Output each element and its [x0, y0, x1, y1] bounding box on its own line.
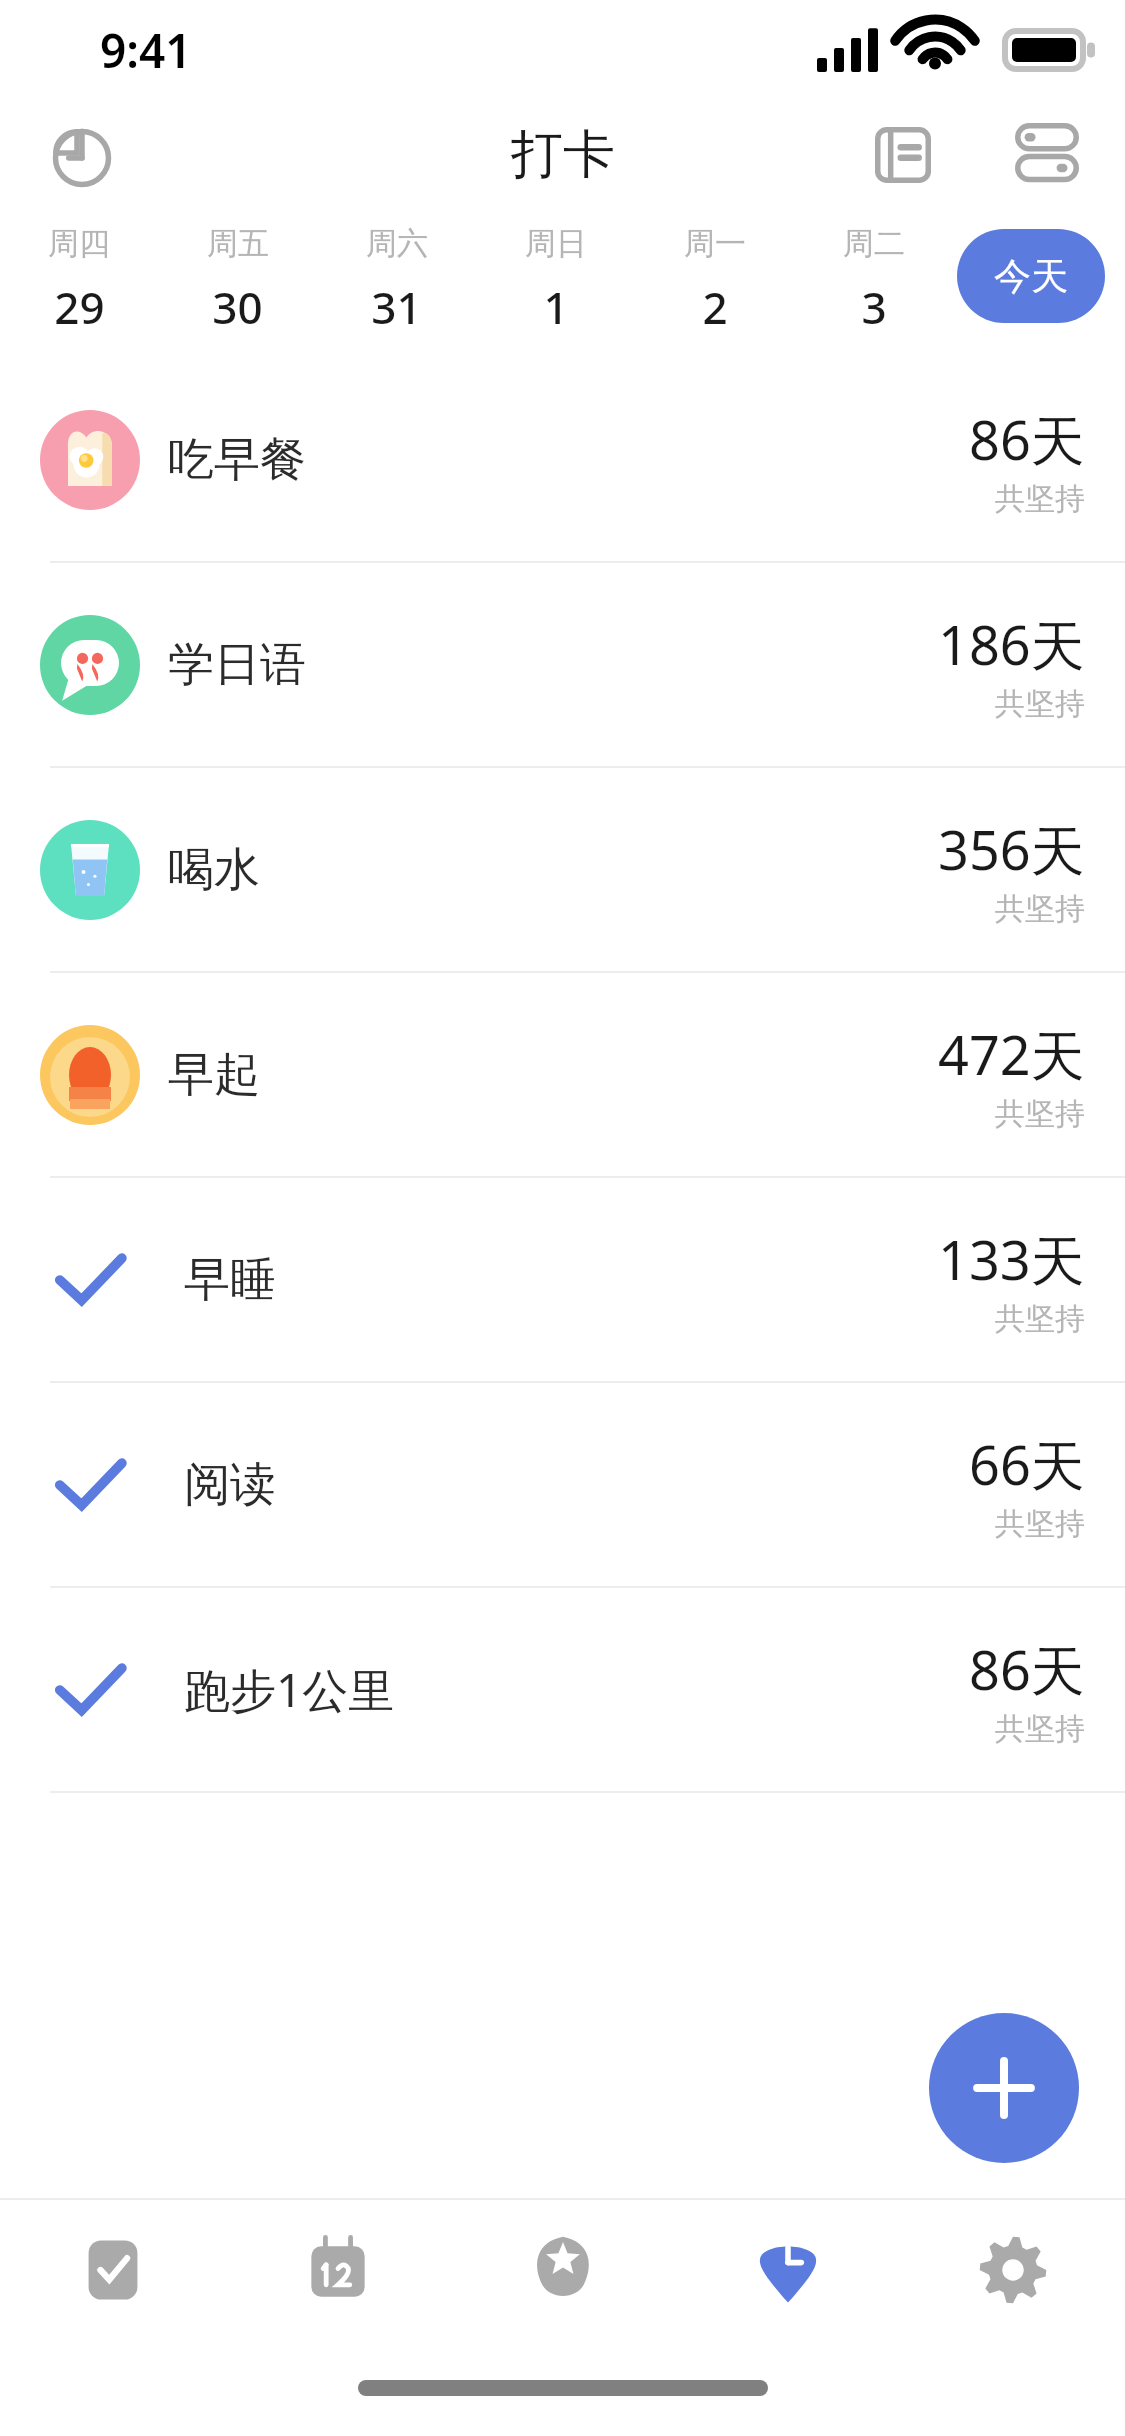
- staticText: 29: [54, 277, 105, 337]
- staticText: 共坚持: [995, 1505, 1085, 1543]
- staticText: 跑步1公里: [184, 1658, 395, 1721]
- staticText: 30: [212, 277, 263, 337]
- button[interactable]: 喝水: [0, 768, 1125, 971]
- button[interactable]: 早睡: [0, 1178, 1125, 1381]
- button[interactable]: 周六: [317, 210, 476, 342]
- button[interactable]: 周一: [635, 210, 794, 342]
- button[interactable]: 学日语: [0, 563, 1125, 766]
- staticText: 阅读: [184, 1456, 276, 1514]
- button[interactable]: 阅读: [0, 1383, 1125, 1586]
- button[interactable]: 周二: [794, 210, 953, 342]
- button[interactable]: Habits: [0, 2200, 225, 2340]
- button[interactable]: Settings: [1003, 111, 1091, 199]
- staticText: 2: [702, 277, 728, 337]
- button[interactable]: 周四: [0, 210, 158, 342]
- staticText: 66天: [969, 1427, 1085, 1501]
- staticText: 31: [371, 277, 422, 337]
- button[interactable]: Achievements: [450, 2200, 675, 2340]
- staticText: 356天: [938, 812, 1085, 886]
- button[interactable]: 周日: [476, 210, 635, 342]
- staticText: 今天: [994, 253, 1068, 300]
- button[interactable]: Notebook: [859, 111, 947, 199]
- button[interactable]: Add habit: [929, 2013, 1079, 2163]
- staticText: 打卡: [511, 122, 615, 188]
- button[interactable]: Settings: [900, 2200, 1125, 2340]
- staticText: 共坚持: [995, 1095, 1085, 1133]
- staticText: 早睡: [184, 1251, 276, 1309]
- staticText: 133天: [938, 1222, 1085, 1296]
- button[interactable]: 周五: [158, 210, 317, 342]
- button[interactable]: Statistics: [36, 112, 122, 198]
- button[interactable]: 跑步1公里: [0, 1588, 1125, 1791]
- staticText: 86天: [969, 1632, 1085, 1706]
- staticText: 共坚持: [995, 480, 1085, 518]
- staticText: 周四: [48, 224, 110, 263]
- staticText: 喝水: [168, 841, 260, 899]
- staticText: 周二: [843, 224, 905, 263]
- staticText: 学日语: [168, 636, 306, 694]
- staticText: 周五: [207, 224, 269, 263]
- staticText: 吃早餐: [168, 431, 306, 489]
- staticText: 1: [543, 277, 569, 337]
- staticText: 早起: [168, 1046, 260, 1104]
- button[interactable]: Timeline: [675, 2200, 900, 2340]
- button[interactable]: Calendar: [225, 2200, 450, 2340]
- staticText: 86天: [969, 402, 1085, 476]
- button[interactable]: 吃早餐: [0, 358, 1125, 561]
- staticText: 周六: [366, 224, 428, 263]
- button[interactable]: 今天: [957, 229, 1105, 323]
- staticText: 周日: [525, 224, 587, 263]
- staticText: 周一: [684, 224, 746, 263]
- staticText: 472天: [938, 1017, 1085, 1091]
- staticText: 共坚持: [995, 685, 1085, 723]
- button[interactable]: 早起: [0, 973, 1125, 1176]
- staticText: 9:41: [100, 19, 192, 82]
- staticText: 186天: [938, 607, 1085, 681]
- staticText: 共坚持: [995, 1300, 1085, 1338]
- staticText: 共坚持: [995, 1710, 1085, 1748]
- staticText: 共坚持: [995, 890, 1085, 928]
- staticText: 3: [861, 277, 887, 337]
